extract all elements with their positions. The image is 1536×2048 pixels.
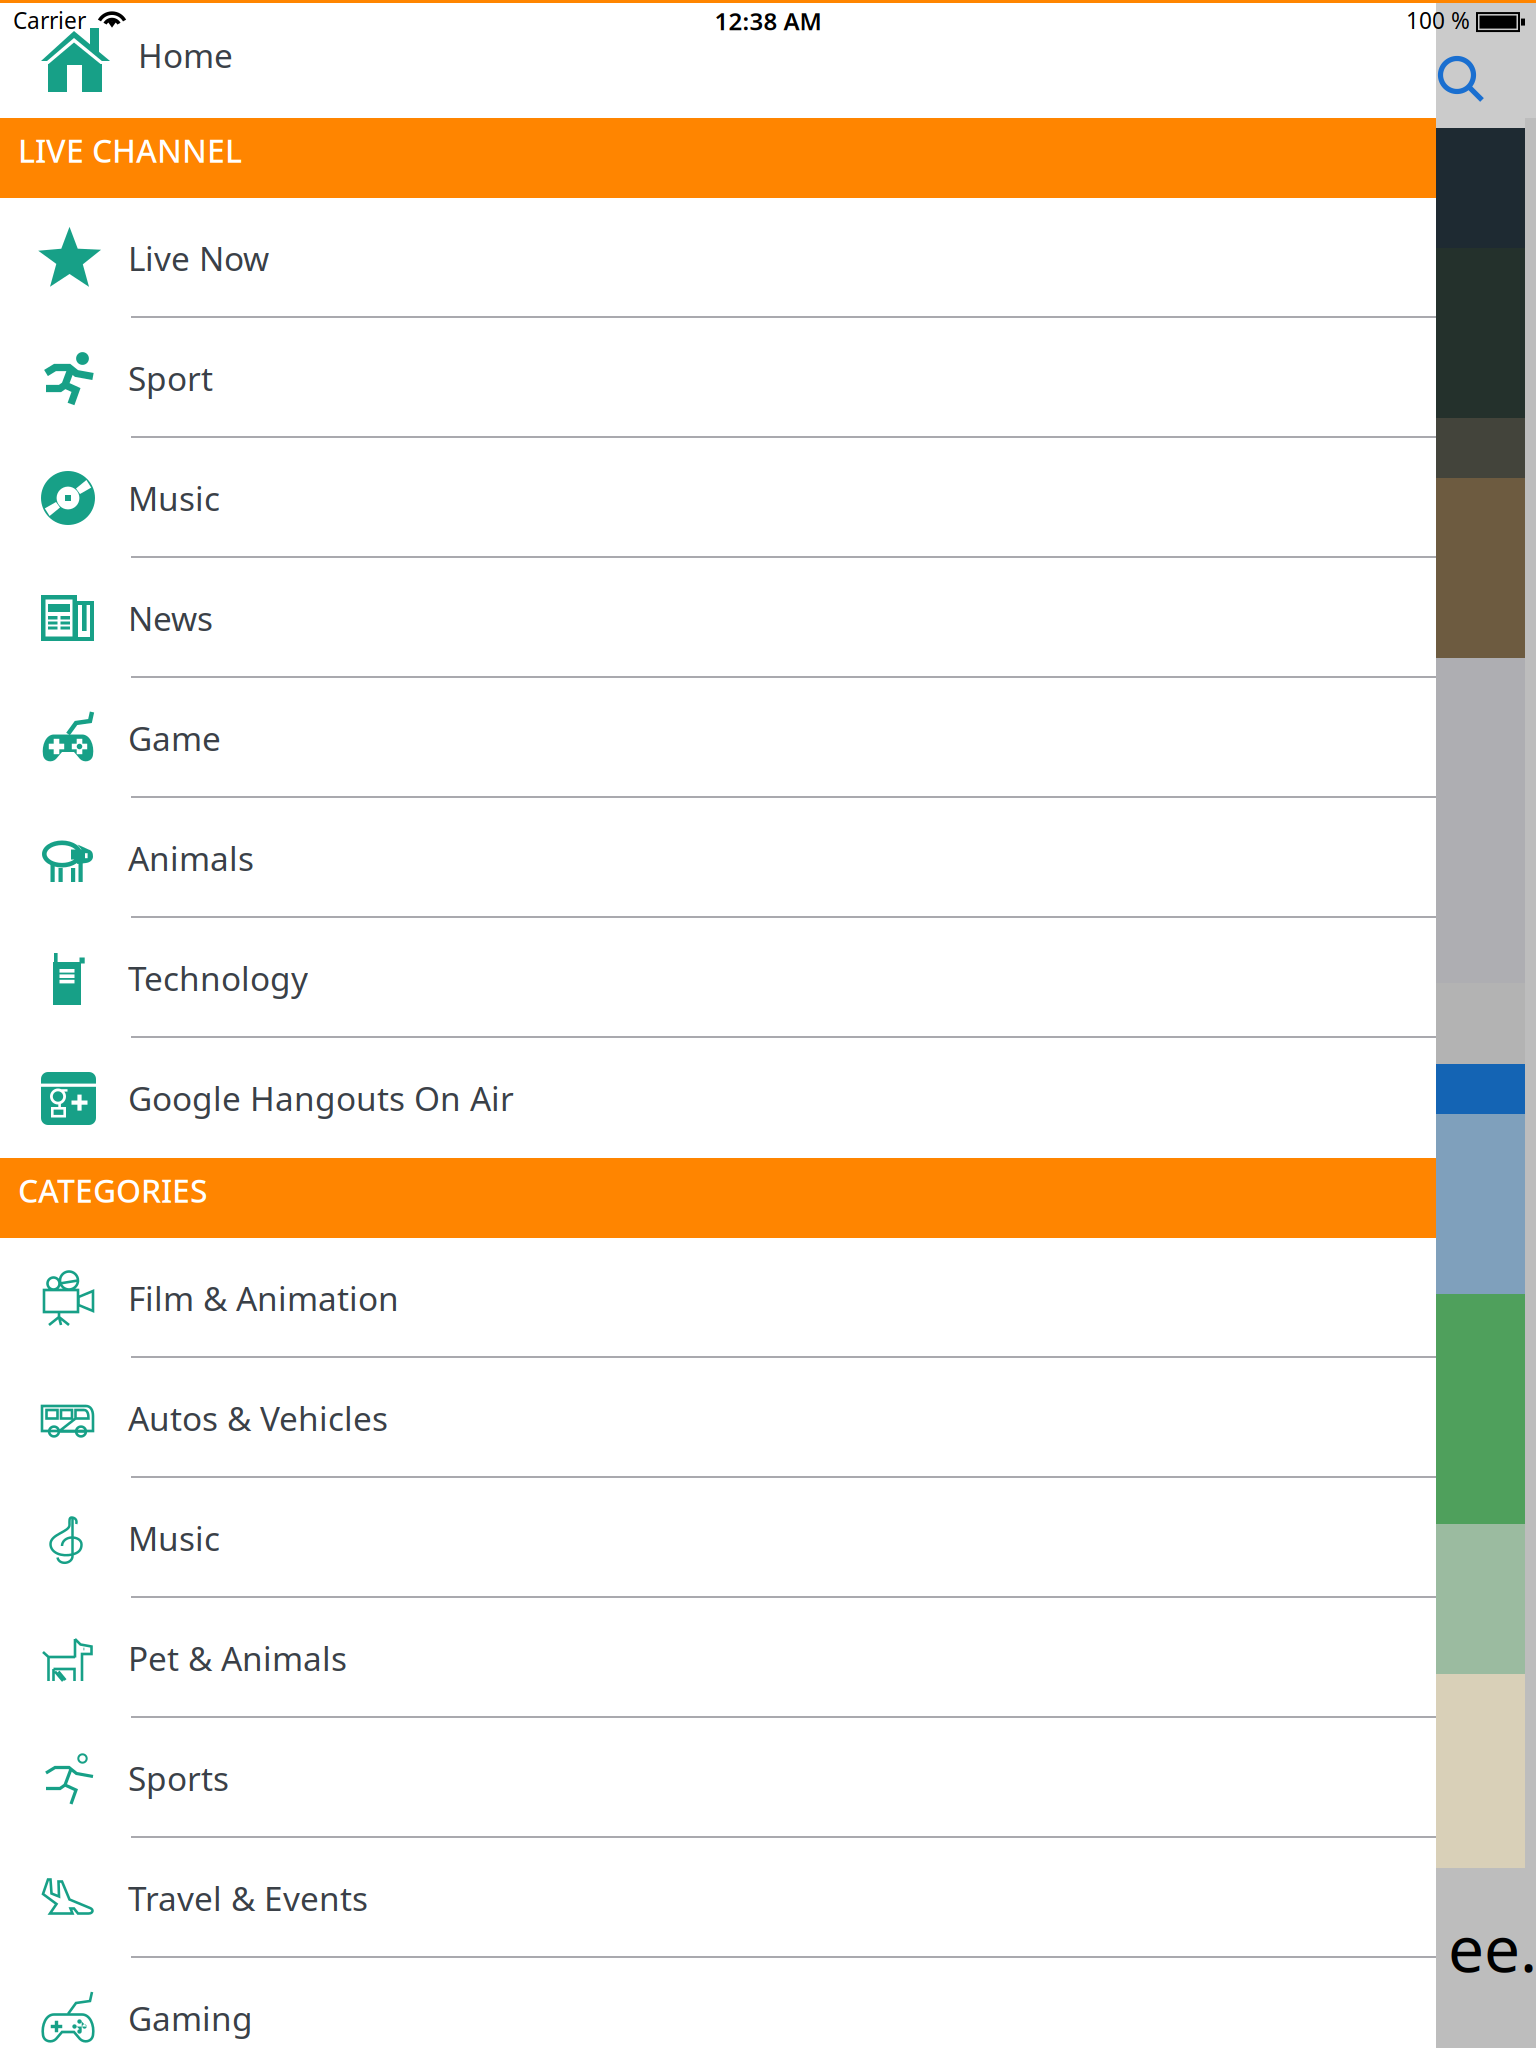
- button[interactable]: Sport: [0, 318, 1436, 438]
- button[interactable]: Sports: [0, 1718, 1436, 1838]
- button[interactable]: Google Hangouts On Air: [0, 1038, 1436, 1158]
- button[interactable]: Film & Animation: [0, 1238, 1436, 1358]
- staticText: LIVE CHANNEL: [18, 129, 242, 171]
- staticText: Animals: [128, 836, 254, 880]
- staticText: Sport: [128, 356, 213, 400]
- staticText: ee.: [1448, 1905, 1536, 1990]
- button[interactable]: Animals: [0, 798, 1436, 918]
- staticText: Travel & Events: [128, 1876, 368, 1920]
- button[interactable]: Game: [0, 678, 1436, 798]
- staticText: Google Hangouts On Air: [128, 1076, 514, 1120]
- staticText: Film & Animation: [128, 1276, 399, 1320]
- staticText: Game: [128, 716, 221, 760]
- staticText: Home: [138, 33, 233, 77]
- button[interactable]: Autos & Vehicles: [0, 1358, 1436, 1478]
- staticText: 100 %: [1406, 5, 1470, 35]
- staticText: CATEGORIES: [18, 1169, 208, 1211]
- staticText: Gaming: [128, 1996, 253, 2040]
- staticText: 12:38 AM: [714, 5, 821, 37]
- button[interactable]: Music: [0, 1478, 1436, 1598]
- button[interactable]: Travel & Events: [0, 1838, 1436, 1958]
- staticText: News: [128, 596, 213, 640]
- staticText: Music: [128, 476, 220, 520]
- staticText: Sports: [128, 1756, 229, 1800]
- staticText: Autos & Vehicles: [128, 1396, 388, 1440]
- button[interactable]: Gaming: [0, 1958, 1436, 2048]
- button[interactable]: Search: [1414, 0, 1536, 118]
- button[interactable]: Live Now: [0, 198, 1436, 318]
- button[interactable]: Pet & Animals: [0, 1598, 1436, 1718]
- button[interactable]: Music: [0, 438, 1436, 558]
- button[interactable]: Technology: [0, 918, 1436, 1038]
- staticText: Live Now: [128, 236, 269, 280]
- button[interactable]: News: [0, 558, 1436, 678]
- staticText: Carrier: [13, 5, 86, 35]
- staticText: Pet & Animals: [128, 1636, 347, 1680]
- staticText: Music: [128, 1516, 220, 1560]
- staticText: Technology: [128, 956, 308, 1000]
- button[interactable]: Home: [0, 0, 1436, 118]
